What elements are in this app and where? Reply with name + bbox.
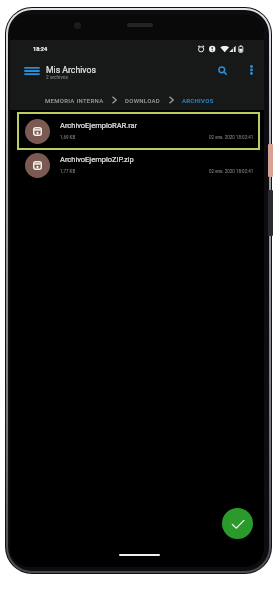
button[interactable]: Menú (21, 63, 42, 79)
button[interactable]: ArchivoEjemploZIP.zip (17, 148, 260, 182)
staticText: ArchivoEjemploZIP.zip (60, 155, 134, 164)
button[interactable]: DOWNLOAD (125, 97, 161, 104)
staticText: ArchivoEjemploRAR.rar (60, 121, 138, 130)
button[interactable]: Confirmar (222, 508, 253, 539)
staticText: DOWNLOAD (125, 97, 161, 104)
staticText: 1,77 KB (60, 169, 76, 174)
staticText: 1,69 KB (60, 135, 76, 140)
button[interactable]: Más opciones (244, 62, 258, 78)
staticText: Mis Archivos (46, 65, 96, 75)
staticText: MEMORIA INTERNA (45, 97, 104, 104)
staticText: 02 ene. 2020 18:02:41 (209, 169, 254, 174)
staticText: 2 archivos (46, 75, 68, 81)
staticText: 02 ene. 2020 18:02:41 (209, 135, 254, 140)
button[interactable]: ArchivoEjemploRAR.rar (17, 114, 260, 148)
button[interactable]: MEMORIA INTERNA (45, 97, 104, 104)
staticText: ARCHIVOS (182, 97, 214, 104)
staticText: 18:24 (33, 46, 48, 53)
button[interactable]: Buscar (214, 62, 230, 78)
button[interactable]: ARCHIVOS (182, 97, 214, 104)
